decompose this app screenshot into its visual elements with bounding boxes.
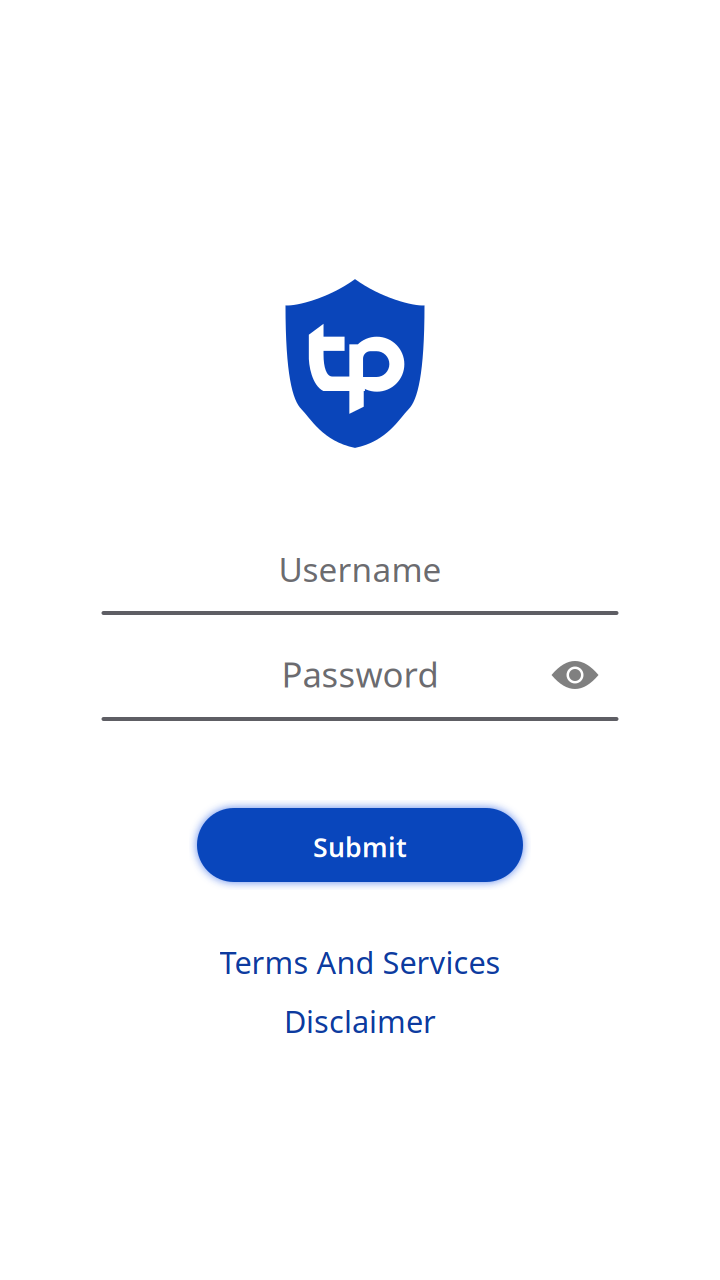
staticText: Terms And Services xyxy=(219,942,500,982)
button[interactable]: Disclaimer xyxy=(284,1001,436,1041)
staticText: Disclaimer xyxy=(284,1001,436,1041)
staticText: Username xyxy=(278,547,441,591)
staticText: Password xyxy=(281,651,438,697)
button[interactable]: Submit xyxy=(197,808,523,882)
button[interactable]: Show password xyxy=(545,650,605,700)
button[interactable]: Terms And Services xyxy=(219,942,500,982)
staticText: Submit xyxy=(313,829,407,865)
